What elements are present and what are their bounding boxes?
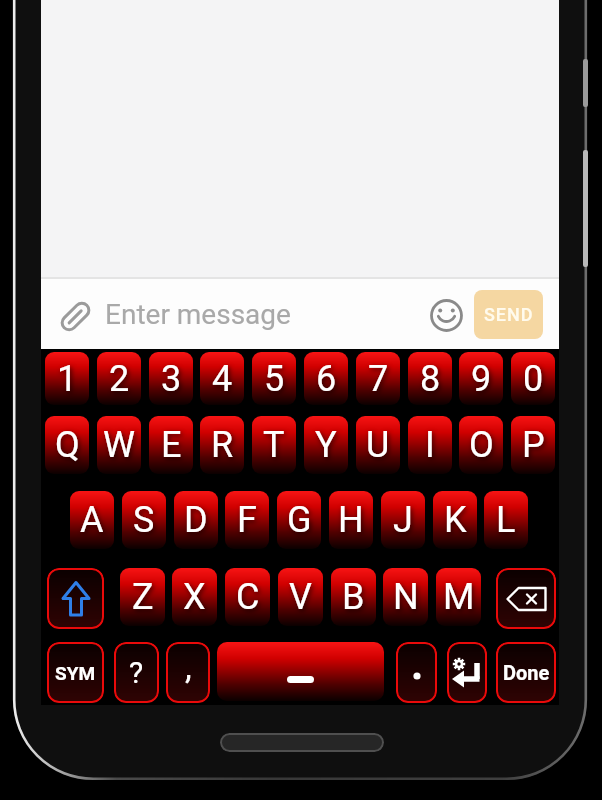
staticText: G [287, 499, 312, 541]
staticText: J [393, 499, 413, 541]
button[interactable]: 6 [304, 352, 348, 405]
staticText: 8 [420, 358, 441, 400]
staticText: 5 [264, 358, 285, 400]
button[interactable]: 2 [97, 352, 141, 405]
button[interactable]: SYM [47, 642, 104, 703]
staticText: 7 [368, 358, 389, 400]
staticText: C [236, 576, 260, 618]
staticText: W [103, 424, 135, 466]
staticText: Done [503, 661, 550, 684]
button[interactable] [217, 642, 384, 701]
staticText: D [184, 499, 208, 541]
button[interactable]: L [484, 491, 528, 549]
staticText: K [444, 499, 467, 541]
staticText: X [183, 576, 206, 618]
button[interactable]: N [383, 568, 428, 626]
button[interactable]: ? [114, 642, 159, 703]
button[interactable]: 1 [45, 352, 89, 405]
staticText: S [133, 499, 155, 541]
button[interactable] [496, 568, 556, 629]
button[interactable] [447, 642, 487, 703]
button[interactable]: M [436, 568, 481, 626]
button[interactable]: 4 [200, 352, 244, 405]
button[interactable]: , [166, 642, 210, 703]
button[interactable]: H [329, 491, 373, 549]
staticText: 1 [57, 358, 78, 400]
button[interactable]: D [174, 491, 218, 549]
button[interactable]: Done [496, 642, 556, 703]
button[interactable] [430, 299, 463, 332]
staticText: I [425, 424, 435, 466]
staticText: L [496, 499, 516, 541]
staticText: B [342, 576, 365, 618]
button[interactable] [396, 642, 437, 703]
button[interactable]: A [70, 491, 114, 549]
button[interactable] [220, 733, 384, 752]
staticText: 4 [212, 358, 233, 400]
button[interactable]: Z [120, 568, 165, 626]
button[interactable]: 5 [252, 352, 296, 405]
staticText: SEND [484, 304, 534, 325]
staticText: ? [129, 655, 144, 690]
staticText: 9 [471, 358, 492, 400]
staticText: P [522, 424, 545, 466]
button[interactable] [57, 298, 94, 335]
button[interactable]: Q [45, 416, 89, 474]
button[interactable] [41, 279, 559, 349]
button[interactable]: P [511, 416, 555, 474]
staticText: , [185, 647, 192, 687]
staticText: A [80, 499, 104, 541]
staticText: Y [315, 424, 337, 466]
button[interactable]: S [122, 491, 166, 549]
button[interactable]: Y [304, 416, 348, 474]
button[interactable]: I [408, 416, 452, 474]
button[interactable]: J [381, 491, 425, 549]
staticText: U [366, 424, 390, 466]
button[interactable]: C [225, 568, 270, 626]
button[interactable]: 3 [149, 352, 193, 405]
staticText: N [393, 576, 419, 618]
staticText: H [338, 499, 364, 541]
staticText: 2 [109, 358, 130, 400]
button[interactable]: W [97, 416, 141, 474]
staticText: 3 [161, 358, 182, 400]
button[interactable]: 7 [356, 352, 400, 405]
staticText: M [443, 576, 475, 618]
button[interactable]: V [278, 568, 323, 626]
staticText: Enter message [105, 298, 291, 331]
button[interactable]: R [200, 416, 244, 474]
button[interactable]: X [172, 568, 217, 626]
staticText: SYM [55, 662, 96, 684]
button[interactable]: U [356, 416, 400, 474]
staticText: Z [132, 576, 154, 618]
staticText: F [237, 499, 257, 541]
button[interactable]: K [433, 491, 477, 549]
button[interactable]: 9 [459, 352, 503, 405]
button[interactable]: B [331, 568, 376, 626]
staticText: O [469, 424, 494, 466]
button[interactable]: O [459, 416, 503, 474]
staticText: T [263, 424, 285, 466]
button[interactable]: T [252, 416, 296, 474]
staticText: E [161, 424, 182, 466]
button[interactable]: G [277, 491, 321, 549]
button[interactable]: 0 [511, 352, 555, 405]
staticText: R [211, 424, 234, 466]
staticText: 6 [316, 358, 337, 400]
button[interactable] [47, 568, 104, 629]
button[interactable]: F [225, 491, 269, 549]
button[interactable]: 8 [408, 352, 452, 405]
button[interactable]: E [149, 416, 193, 474]
button[interactable]: SEND [474, 290, 543, 339]
staticText: Q [55, 424, 80, 466]
staticText: 0 [523, 358, 544, 400]
staticText: V [289, 576, 312, 618]
